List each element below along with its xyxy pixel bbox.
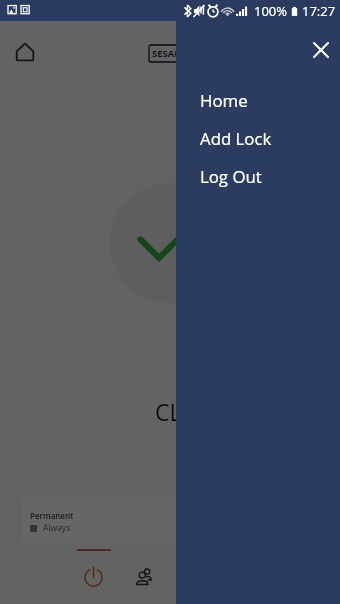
- button[interactable]: History: [170, 546, 221, 604]
- button[interactable]: Log Out: [176, 157, 340, 195]
- button[interactable]: Guests: [119, 546, 170, 604]
- button[interactable]: Lock: [68, 546, 119, 604]
- button[interactable]: Add Lock: [176, 119, 340, 157]
- staticText: Log Out: [200, 165, 262, 188]
- staticText: Add Lock: [200, 127, 272, 150]
- staticText: 100%: [254, 2, 288, 20]
- staticText: SESAME: [152, 47, 189, 60]
- staticText: CLOSED: [155, 396, 242, 427]
- button[interactable]: Home: [16, 43, 34, 61]
- staticText: Home: [200, 89, 248, 112]
- staticText: Permanent: [30, 510, 74, 521]
- button[interactable]: Close menu: [305, 34, 337, 66]
- button[interactable]: Home: [176, 81, 340, 119]
- staticText: 17:27: [302, 2, 336, 20]
- staticText: Always: [43, 522, 71, 534]
- button[interactable]: Permanent: [22, 496, 318, 544]
